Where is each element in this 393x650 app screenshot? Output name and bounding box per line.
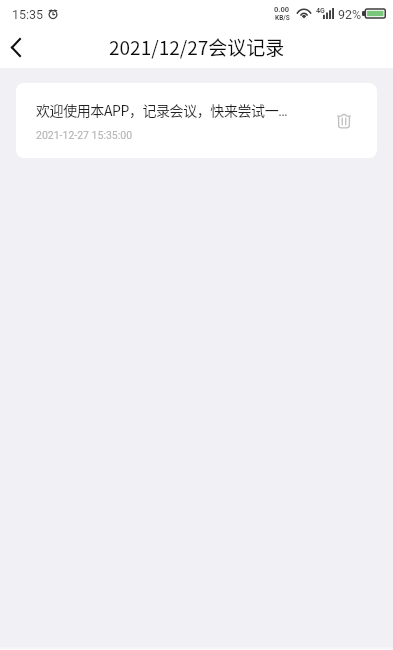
staticText: 欢迎使用本APP，记录会议，快来尝试一… xyxy=(36,100,288,120)
staticText: 2021/12/27会议记录 xyxy=(109,33,285,61)
staticText: 15:35 xyxy=(12,7,44,22)
staticText: 2021-12-27 15:35:00 xyxy=(36,129,133,141)
staticText: 4G xyxy=(316,7,325,15)
button[interactable]: Delete xyxy=(320,97,368,145)
staticText: KB/S xyxy=(275,14,290,22)
button[interactable]: Back xyxy=(0,27,32,68)
button[interactable]: 欢迎使用本APP，记录会议，快来尝试一… xyxy=(16,83,377,158)
staticText: 92% xyxy=(338,7,362,22)
staticText: 0.00 xyxy=(274,5,290,14)
